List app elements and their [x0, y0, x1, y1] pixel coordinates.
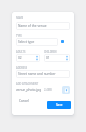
button[interactable]: Attach file	[62, 86, 70, 94]
staticText: Street name and number	[18, 72, 68, 76]
button[interactable]: Add type	[61, 40, 64, 43]
staticText: 01	[46, 56, 66, 60]
staticText: ADULTS	[16, 50, 26, 53]
staticText: Cancel	[19, 99, 29, 103]
staticText: Name of the venue	[18, 24, 68, 28]
staticText: 2.4MB	[44, 88, 52, 92]
button[interactable]: 02	[16, 54, 40, 62]
staticText: ADDRESS	[16, 66, 28, 69]
staticText: Save	[56, 103, 63, 107]
button[interactable]: Name of the venue	[16, 22, 70, 30]
staticText: Select type	[18, 40, 56, 44]
staticText: TYPE	[16, 34, 22, 37]
button[interactable]: Cancel	[18, 98, 30, 104]
button[interactable]: Save	[47, 101, 71, 109]
staticText: 02	[18, 56, 36, 60]
staticText: NAME	[16, 16, 24, 19]
staticText: CHILDREN	[44, 50, 57, 53]
button[interactable]: Street name and number	[16, 70, 70, 78]
button[interactable]: Select type	[16, 38, 58, 46]
staticText: ADD ATTACHMENT	[16, 82, 39, 85]
staticText: venue_photo.jpg	[16, 88, 42, 92]
button[interactable]: 01	[44, 54, 70, 62]
